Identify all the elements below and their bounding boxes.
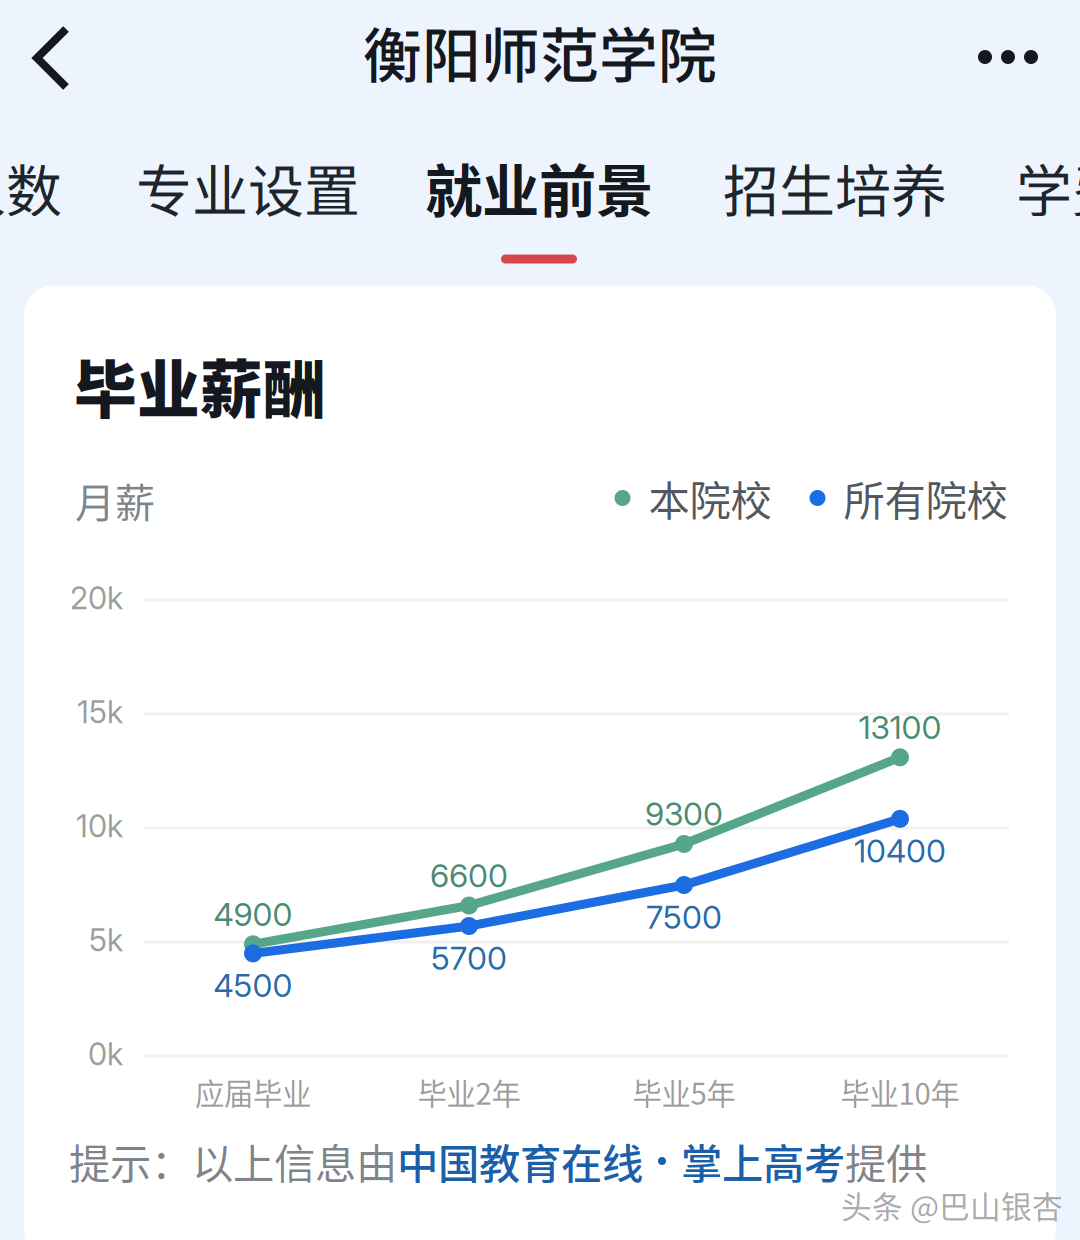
staticText: 20k xyxy=(70,579,123,616)
staticText: 10k xyxy=(76,807,123,844)
staticText: 毕业5年 xyxy=(632,1071,735,1113)
button[interactable]: 中国教育在线 xyxy=(397,1131,845,1191)
staticText: 学费 xyxy=(1016,146,1080,228)
staticText: 15k xyxy=(77,693,123,730)
button[interactable]: 就业前景 xyxy=(421,128,657,258)
staticText: 5700 xyxy=(431,939,507,977)
staticText: 本院校 xyxy=(648,468,771,528)
staticText: 应届毕业 xyxy=(195,1071,311,1113)
button[interactable]: 招生培养 xyxy=(717,146,953,228)
staticText: 9300 xyxy=(645,795,723,833)
staticText: 毕业2年 xyxy=(417,1071,520,1113)
button[interactable]: 人数 xyxy=(0,146,62,228)
staticText: 提示：以上信息由 xyxy=(69,1131,397,1191)
staticText: 所有院校 xyxy=(843,468,1007,528)
button[interactable]: Back xyxy=(10,18,120,98)
button[interactable]: 学费 xyxy=(1016,146,1080,228)
staticText: 13100 xyxy=(858,708,941,747)
staticText: 掌上高考 xyxy=(681,1131,845,1191)
staticText: 毕业薪酬 xyxy=(74,340,326,430)
staticText: 5k xyxy=(89,921,123,958)
button[interactable]: More xyxy=(948,17,1068,97)
staticText: 人数 xyxy=(0,146,62,228)
staticText: 4500 xyxy=(213,966,292,1005)
staticText: 专业设置 xyxy=(136,146,360,228)
staticText: 头条 @巴山银杏 xyxy=(841,1183,1063,1227)
staticText: 衡阳师范学院 xyxy=(363,9,717,94)
staticText: 0k xyxy=(88,1035,123,1072)
staticText: 7500 xyxy=(646,898,722,936)
button[interactable]: 专业设置 xyxy=(130,146,366,228)
staticText: 毕业10年 xyxy=(840,1071,959,1113)
staticText: 6600 xyxy=(430,856,508,895)
staticText: 月薪 xyxy=(75,471,155,529)
staticText: 就业前景 xyxy=(425,145,653,228)
staticText: 中国教育在线 xyxy=(397,1131,643,1191)
staticText: 4900 xyxy=(213,895,292,934)
staticText: 10400 xyxy=(854,831,946,870)
staticText: 提供 xyxy=(845,1131,927,1191)
staticText: 招生培养 xyxy=(723,146,947,228)
